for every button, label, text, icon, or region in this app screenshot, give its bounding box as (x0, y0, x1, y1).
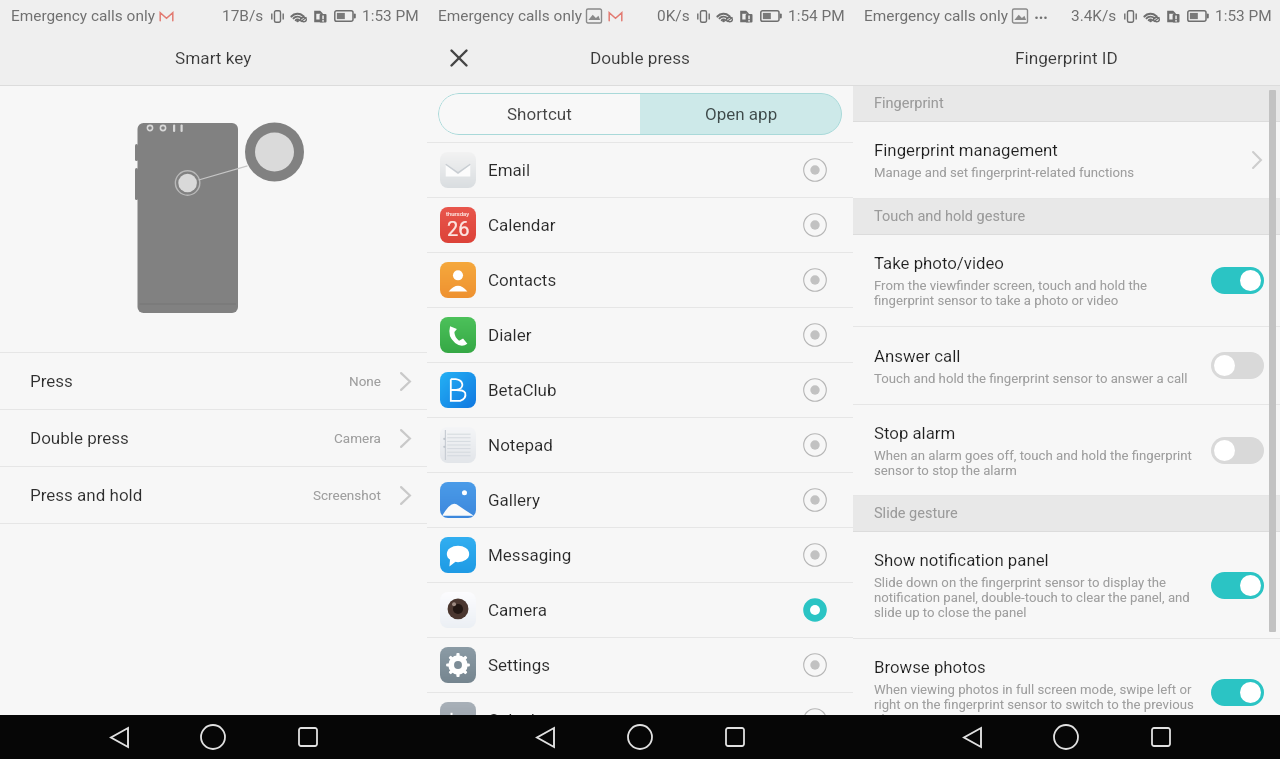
staticText: 0K/s (657, 7, 690, 25)
button[interactable]: Home (187, 715, 239, 759)
staticText: Fingerprint management (874, 140, 1058, 160)
button[interactable]: Notepad (427, 418, 853, 472)
button[interactable]: Browse photos (853, 639, 1280, 745)
staticText: Double press (30, 428, 129, 448)
staticText: Camera (488, 600, 547, 620)
button[interactable]: Back (93, 715, 145, 759)
staticText: BetaClub (488, 380, 557, 400)
button[interactable]: Messaging (427, 528, 853, 582)
staticText: Slide down on the fingerprint sensor to … (874, 575, 1167, 590)
button[interactable]: Gallery (427, 473, 853, 527)
staticText: Notepad (488, 435, 553, 455)
staticText: sensor to stop the alarm (874, 463, 1017, 478)
button[interactable]: Contacts (427, 253, 853, 307)
button[interactable]: Close (437, 36, 481, 80)
button[interactable]: Calculator (427, 693, 853, 715)
button[interactable]: Camera (427, 583, 853, 637)
button[interactable]: Toggle off (1211, 437, 1264, 464)
staticText: Emergency calls only (11, 7, 155, 25)
button[interactable]: Recents (709, 715, 761, 759)
staticText: Show notification panel (874, 550, 1049, 570)
staticText: Double press (590, 48, 690, 68)
staticText: right on the fingerprint sensor to switc… (874, 697, 1194, 712)
staticText: Dialer (488, 325, 532, 345)
staticText: Calculator (488, 710, 565, 715)
button[interactable]: BetaClub (427, 363, 853, 417)
button[interactable]: Email (427, 143, 853, 197)
staticText: Messaging (488, 545, 572, 565)
staticText: Fingerprint (874, 95, 944, 112)
staticText: 1:53 PM (362, 7, 419, 25)
staticText: 3.4K/s (1071, 7, 1117, 25)
staticText: Screenshot (313, 487, 381, 503)
staticText: When viewing photos in full screen mode,… (874, 682, 1192, 697)
staticText: Stop alarm (874, 423, 956, 443)
staticText: thursday (446, 210, 470, 217)
staticText: Answer call (874, 346, 961, 366)
button[interactable]: Toggle off (1211, 352, 1264, 379)
button[interactable]: Shortcut (438, 93, 640, 135)
staticText: Gallery (488, 490, 541, 510)
staticText: Fingerprint ID (1015, 48, 1118, 68)
button[interactable]: Settings (427, 638, 853, 692)
staticText: Shortcut (507, 104, 572, 124)
button[interactable]: Show notification panel (853, 532, 1280, 638)
staticText: Manage and set fingerprint-related funct… (874, 165, 1135, 180)
button[interactable]: thursday (427, 198, 853, 252)
button[interactable]: Home (614, 715, 666, 759)
staticText: Contacts (488, 270, 557, 290)
button[interactable]: Recents (1135, 715, 1187, 759)
staticText: From the viewfinder screen, touch and ho… (874, 278, 1147, 293)
staticText: Open app (705, 104, 778, 124)
staticText: 1:54 PM (788, 7, 845, 25)
staticText: fingerprint sensor to take a photo or vi… (874, 293, 1119, 308)
button[interactable]: Back (519, 715, 571, 759)
staticText: 26 (447, 217, 470, 240)
button[interactable]: Press (0, 353, 427, 409)
button[interactable]: Answer call (853, 327, 1280, 404)
staticText: notification panel, double-touch to clea… (874, 590, 1190, 605)
button[interactable]: Take photo/video (853, 235, 1280, 326)
staticText: Slide gesture (874, 505, 958, 522)
button[interactable]: Toggle on (1211, 572, 1264, 599)
button[interactable]: Double press (0, 410, 427, 466)
staticText: Touch and hold the fingerprint sensor to… (874, 371, 1188, 386)
button[interactable]: Stop alarm (853, 405, 1280, 495)
staticText: Emergency calls only (438, 7, 582, 25)
button[interactable]: Dialer (427, 308, 853, 362)
staticText: Press and hold (30, 485, 143, 505)
button[interactable]: Toggle on (1211, 679, 1264, 706)
staticText: Press (30, 371, 73, 391)
staticText: Calendar (488, 215, 556, 235)
button[interactable]: Recents (282, 715, 334, 759)
staticText: When an alarm goes off, touch and hold t… (874, 448, 1192, 463)
button[interactable]: Back (946, 715, 998, 759)
staticText: Settings (488, 655, 551, 675)
staticText: None (349, 373, 381, 389)
button[interactable]: Press and hold (0, 467, 427, 523)
staticText: slide up to close the panel (874, 605, 1027, 620)
button[interactable]: Fingerprint management (853, 122, 1280, 198)
staticText: photo (874, 712, 908, 727)
staticText: 17B/s (222, 7, 264, 25)
staticText: Take photo/video (874, 253, 1004, 273)
staticText: 1:53 PM (1215, 7, 1272, 25)
staticText: Emergency calls only (864, 7, 1008, 25)
staticText: Touch and hold gesture (874, 208, 1026, 225)
staticText: Browse photos (874, 657, 986, 677)
staticText: Camera (334, 430, 381, 446)
staticText: Smart key (175, 48, 252, 68)
button[interactable]: Toggle on (1211, 267, 1264, 294)
staticText: Email (488, 160, 531, 180)
button[interactable]: Home (1040, 715, 1092, 759)
button[interactable]: Open app (640, 93, 842, 135)
